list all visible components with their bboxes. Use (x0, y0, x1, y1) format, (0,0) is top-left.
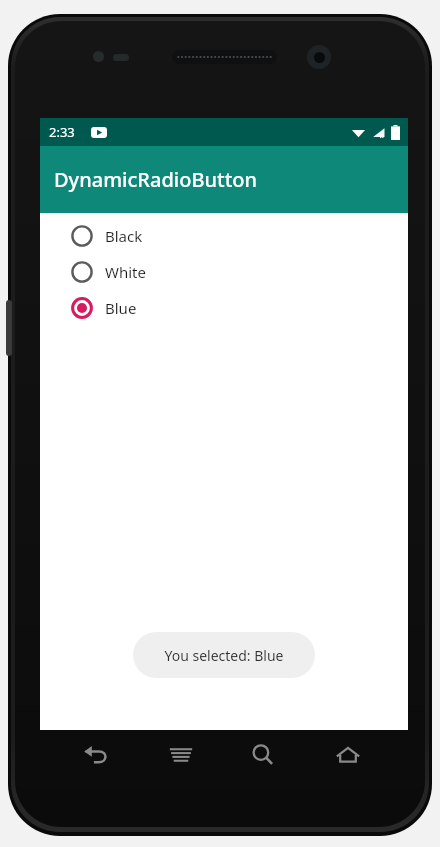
button[interactable]: Menu (168, 743, 194, 767)
button[interactable]: Home (335, 743, 361, 767)
button[interactable]: Search (250, 743, 276, 767)
staticText: White (105, 262, 146, 282)
button[interactable]: Back (83, 743, 109, 767)
staticText: DynamicRadioButton (54, 166, 258, 193)
button[interactable]: Blue (40, 290, 408, 326)
staticText: Black (105, 226, 143, 246)
staticText: Blue (105, 298, 137, 318)
staticText: You selected: Blue (164, 646, 284, 665)
staticText: 2:33 (49, 123, 75, 141)
button[interactable]: Black (40, 218, 408, 254)
button[interactable]: White (40, 254, 408, 290)
